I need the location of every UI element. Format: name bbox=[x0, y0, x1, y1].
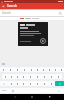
button[interactable] bbox=[34, 67, 40, 72]
button[interactable]: Search bbox=[58, 11, 63, 16]
staticText: . bbox=[50, 89, 51, 92]
button[interactable] bbox=[48, 81, 55, 86]
button[interactable] bbox=[20, 81, 27, 86]
button[interactable] bbox=[14, 81, 20, 86]
button[interactable]: Search bbox=[0, 10, 64, 16]
button[interactable] bbox=[27, 74, 34, 79]
button[interactable] bbox=[28, 67, 34, 72]
button[interactable] bbox=[27, 81, 34, 86]
button[interactable] bbox=[52, 67, 58, 72]
button[interactable]: Search bbox=[7, 3, 64, 9]
button[interactable] bbox=[8, 74, 14, 79]
button[interactable] bbox=[8, 81, 14, 86]
button[interactable] bbox=[2, 74, 8, 79]
button[interactable] bbox=[48, 74, 55, 79]
button[interactable]: Back bbox=[0, 3, 7, 9]
button[interactable] bbox=[7, 67, 14, 72]
button[interactable]: ?123 bbox=[0, 88, 9, 93]
button[interactable]: Search bbox=[55, 81, 64, 86]
button[interactable]: Play bbox=[40, 38, 46, 44]
button[interactable] bbox=[34, 74, 41, 79]
button[interactable] bbox=[58, 67, 64, 72]
button[interactable] bbox=[0, 62, 64, 66]
staticText: Search bbox=[2, 11, 11, 15]
button[interactable] bbox=[41, 74, 48, 79]
staticText: Search bbox=[7, 4, 18, 8]
button[interactable] bbox=[41, 81, 48, 86]
button[interactable]: Next bbox=[54, 88, 64, 93]
button[interactable] bbox=[14, 74, 20, 79]
button[interactable] bbox=[34, 81, 41, 86]
button[interactable] bbox=[40, 67, 46, 72]
button[interactable]: Home bbox=[29, 94, 35, 100]
button[interactable] bbox=[21, 67, 28, 72]
button[interactable] bbox=[46, 67, 52, 72]
button[interactable]: Recents bbox=[47, 94, 53, 100]
button[interactable] bbox=[55, 74, 62, 79]
button[interactable] bbox=[0, 67, 7, 72]
button[interactable] bbox=[14, 67, 21, 72]
button[interactable]: Play bbox=[18, 22, 48, 46]
button[interactable]: Shift bbox=[0, 81, 8, 86]
button[interactable]: Emoji bbox=[9, 88, 16, 93]
staticText: ?123 bbox=[2, 89, 7, 92]
button[interactable] bbox=[20, 74, 27, 79]
button[interactable]: Back bbox=[12, 94, 18, 100]
